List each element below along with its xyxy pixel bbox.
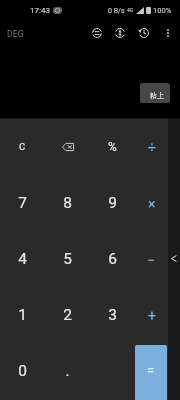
button[interactable]: 0 <box>0 344 45 400</box>
staticText: 4G <box>127 7 134 13</box>
button[interactable]: DEG <box>0 24 30 44</box>
button[interactable]: ÷ <box>135 118 168 175</box>
button[interactable]: 8 <box>45 175 90 232</box>
button[interactable]: 1 <box>0 288 45 344</box>
staticText: 1 <box>18 306 27 324</box>
button[interactable]: 6 <box>90 232 135 288</box>
button[interactable]: History <box>133 22 155 44</box>
button[interactable]: 4 <box>0 232 45 288</box>
staticText: ÷ <box>148 139 156 155</box>
staticText: 粘上 <box>150 91 164 100</box>
button[interactable]: × <box>135 175 168 232</box>
staticText: 0 <box>18 362 27 380</box>
staticText: 3 <box>108 306 117 324</box>
button[interactable]: Open scientific pad <box>168 246 180 270</box>
button[interactable]: C <box>0 118 45 175</box>
staticText: = <box>147 363 155 378</box>
button[interactable]: Unit converter <box>86 22 108 44</box>
staticText: − <box>147 252 156 268</box>
staticText: 100% <box>153 6 172 15</box>
button[interactable]: Backspace <box>45 118 90 175</box>
staticText: 5 <box>63 250 72 268</box>
button[interactable]: Calculator mode <box>109 22 131 44</box>
button[interactable]: + <box>135 288 168 344</box>
staticText: + <box>148 308 156 324</box>
staticText: 6 <box>108 250 117 268</box>
staticText: 4 <box>18 250 27 268</box>
other: Backspace <box>59 140 76 153</box>
staticText: 0 B/s <box>108 7 125 15</box>
staticText: DEG <box>7 29 24 39</box>
staticText: C <box>19 141 26 152</box>
staticText: 7 <box>18 194 27 212</box>
button[interactable]: − <box>135 232 168 288</box>
button[interactable]: 9 <box>90 175 135 232</box>
button[interactable]: 7 <box>0 175 45 232</box>
staticText: 2 <box>63 306 72 324</box>
staticText: . <box>65 362 70 380</box>
button[interactable]: 3 <box>90 288 135 344</box>
staticText: % <box>108 140 117 154</box>
button[interactable]: 5 <box>45 232 90 288</box>
button[interactable]: 粘上 <box>140 83 170 103</box>
button[interactable]: 2 <box>45 288 90 344</box>
button[interactable]: = <box>135 345 167 400</box>
staticText: 9 <box>108 194 117 212</box>
staticText: 17:43 <box>30 6 50 15</box>
button[interactable]: . <box>45 344 90 400</box>
button[interactable]: More options <box>157 22 179 44</box>
staticText: × <box>148 196 156 212</box>
staticText: 8 <box>63 194 72 212</box>
button[interactable]: % <box>90 118 135 175</box>
